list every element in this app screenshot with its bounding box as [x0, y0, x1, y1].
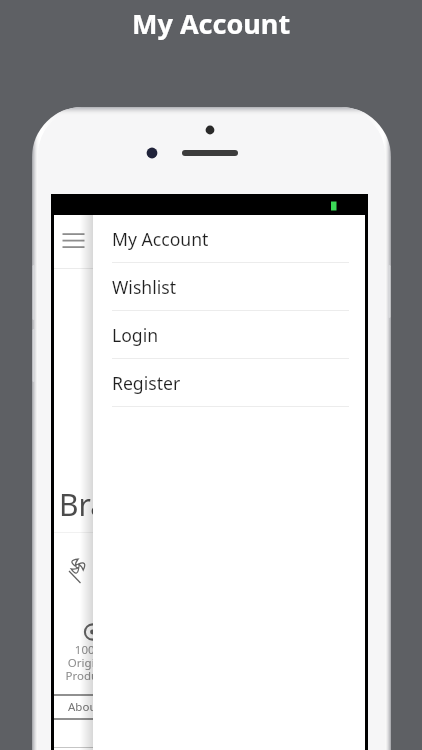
button[interactable]: Login	[93, 311, 365, 359]
staticText: Wishlist	[112, 275, 177, 299]
staticText: Login	[112, 323, 159, 347]
button[interactable]: Wishlist	[93, 263, 365, 311]
button[interactable]: My Account	[93, 215, 365, 263]
staticText: About Us	[68, 699, 118, 715]
button[interactable]: About Us	[54, 696, 365, 718]
staticText: Brands	[59, 484, 159, 525]
staticText: Register	[112, 371, 181, 395]
staticText: My Account	[112, 227, 209, 251]
staticText: 100% Original Products	[49, 642, 130, 684]
staticText: My Account	[132, 5, 291, 42]
button[interactable]: Register	[93, 359, 365, 407]
button[interactable]: Open navigation menu	[54, 224, 94, 254]
